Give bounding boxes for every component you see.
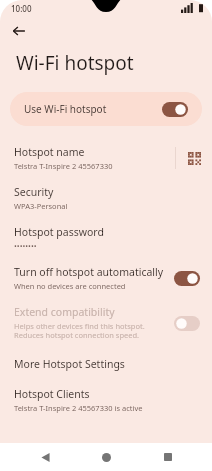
button[interactable]: Recents	[151, 443, 185, 471]
staticText: More Hotspot Settings	[14, 357, 125, 371]
staticText: Use Wi-Fi hotspot	[24, 102, 162, 116]
button[interactable]: Share via QR code	[176, 138, 212, 178]
staticText: Telstra T-Inspire 2 45567330 is active	[14, 403, 143, 413]
button[interactable]: Extend compatibility	[0, 298, 212, 348]
staticText: ••••••••	[14, 241, 37, 251]
staticText: When no devices are connected	[14, 281, 126, 291]
button[interactable]: Turn off hotspot automatically	[0, 258, 212, 298]
button[interactable]: More Hotspot Settings	[0, 348, 212, 380]
staticText: Helps other devices find this hotspot. R…	[14, 321, 145, 341]
staticText: Wi-Fi hotspot	[16, 50, 134, 76]
button[interactable]: Hotspot password	[0, 218, 212, 258]
button[interactable]: Back	[6, 18, 32, 44]
button[interactable]: Hotspot Clients	[0, 380, 212, 420]
staticText: Hotspot password	[14, 225, 104, 239]
staticText: Turn off hotspot automatically	[14, 265, 164, 279]
staticText: Extend compatibility	[14, 305, 115, 319]
staticText: Security	[14, 185, 54, 199]
staticText: WPA3-Personal	[14, 201, 68, 211]
button[interactable]: Back	[28, 443, 62, 471]
staticText: Hotspot name	[14, 145, 85, 159]
staticText: 10:00	[11, 3, 32, 14]
button[interactable]: Use Wi-Fi hotspot	[10, 92, 202, 126]
staticText: Telstra T-Inspire 2 45567330	[14, 161, 113, 171]
button[interactable]: Security	[0, 178, 212, 218]
button[interactable]: Hotspot name	[0, 138, 175, 178]
staticText: Hotspot Clients	[14, 387, 90, 401]
button[interactable]: Home	[89, 443, 123, 471]
